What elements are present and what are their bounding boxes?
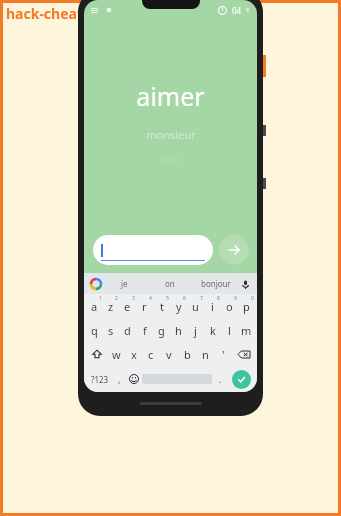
button[interactable]: .: [212, 368, 228, 390]
staticText: y: [176, 299, 182, 314]
staticText: u: [192, 299, 199, 314]
staticText: n: [202, 347, 209, 362]
button[interactable]: j: [187, 318, 204, 342]
button[interactable]: Maj: [86, 342, 108, 366]
button[interactable]: p: [238, 294, 255, 318]
staticText: 6: [183, 295, 186, 302]
button[interactable]: g: [153, 318, 170, 342]
button[interactable]: l: [221, 318, 238, 342]
staticText: 04: [232, 5, 242, 16]
staticText: b: [184, 347, 191, 362]
staticText: .: [219, 373, 222, 385]
button[interactable]: je: [102, 273, 147, 294]
button[interactable]: o: [221, 294, 238, 318]
button[interactable]: q: [86, 318, 102, 342]
staticText: 8: [217, 295, 220, 302]
staticText: s: [108, 323, 114, 338]
staticText: je: [121, 278, 128, 289]
button[interactable]: v: [160, 342, 178, 366]
staticText: i: [211, 299, 214, 314]
staticText: 9: [234, 295, 237, 302]
staticText: ,: [118, 373, 121, 385]
staticText: r: [142, 299, 147, 314]
staticText: v: [166, 347, 172, 362]
staticText: 4: [149, 295, 152, 302]
staticText: p: [243, 299, 250, 314]
staticText: x: [131, 347, 137, 362]
staticText: q: [91, 323, 98, 338]
staticText: hack-cheat.org: [6, 4, 111, 23]
staticText: aimer: [136, 79, 205, 113]
staticText: 5: [166, 295, 169, 302]
button[interactable]: Google: [90, 278, 102, 290]
button[interactable]: e: [119, 294, 136, 318]
staticText: bonjour: [201, 278, 231, 289]
button[interactable]: Valider: [228, 368, 254, 390]
staticText: aimer: [160, 154, 182, 165]
staticText: m: [241, 323, 252, 338]
button[interactable]: x: [125, 342, 142, 366]
button[interactable]: r: [136, 294, 153, 318]
staticText: h: [175, 323, 182, 338]
button[interactable]: ?123: [87, 368, 112, 390]
button[interactable]: i: [204, 294, 221, 318]
button[interactable]: Supprimer: [232, 342, 255, 366]
staticText: ?123: [91, 374, 109, 385]
button[interactable]: Microphone: [239, 278, 251, 290]
staticText: o: [226, 299, 233, 314]
staticText: monsieur: [146, 127, 196, 142]
button[interactable]: t: [153, 294, 170, 318]
staticText: 1: [99, 295, 102, 302]
staticText: 7: [200, 295, 203, 302]
staticText: a: [91, 299, 98, 314]
button[interactable]: d: [119, 318, 136, 342]
staticText: 2: [115, 295, 118, 302]
staticText: l: [228, 323, 231, 338]
staticText: z: [108, 299, 114, 314]
button[interactable]: w: [108, 342, 125, 366]
button[interactable]: a: [86, 294, 102, 318]
button[interactable]: k: [204, 318, 221, 342]
staticText: ': [222, 347, 225, 362]
button[interactable]: bonjour: [193, 273, 239, 294]
staticText: d: [124, 323, 131, 338]
button[interactable]: h: [170, 318, 187, 342]
staticText: j: [194, 323, 197, 338]
button[interactable]: m: [238, 318, 255, 342]
staticText: 0: [251, 295, 254, 302]
button[interactable]: c: [142, 342, 160, 366]
button[interactable]: b: [178, 342, 196, 366]
button[interactable]: ,: [112, 368, 126, 390]
button[interactable]: f: [136, 318, 153, 342]
staticText: e: [124, 299, 131, 314]
staticText: t: [160, 299, 164, 314]
button[interactable]: [93, 235, 213, 265]
staticText: w: [112, 347, 121, 362]
staticText: 3: [132, 295, 135, 302]
button[interactable]: Valider: [219, 235, 249, 265]
staticText: s: [246, 5, 250, 15]
staticText: c: [148, 347, 154, 362]
button[interactable]: n: [196, 342, 214, 366]
staticText: g: [158, 323, 165, 338]
button[interactable]: s: [102, 318, 119, 342]
staticText: k: [210, 323, 216, 338]
button[interactable]: ': [214, 342, 232, 366]
button[interactable]: Emoji: [126, 368, 142, 390]
button[interactable]: z: [102, 294, 119, 318]
button[interactable]: y: [170, 294, 187, 318]
button[interactable]: on: [147, 273, 193, 294]
button[interactable]: u: [187, 294, 204, 318]
staticText: on: [165, 278, 175, 289]
staticText: f: [143, 323, 147, 338]
